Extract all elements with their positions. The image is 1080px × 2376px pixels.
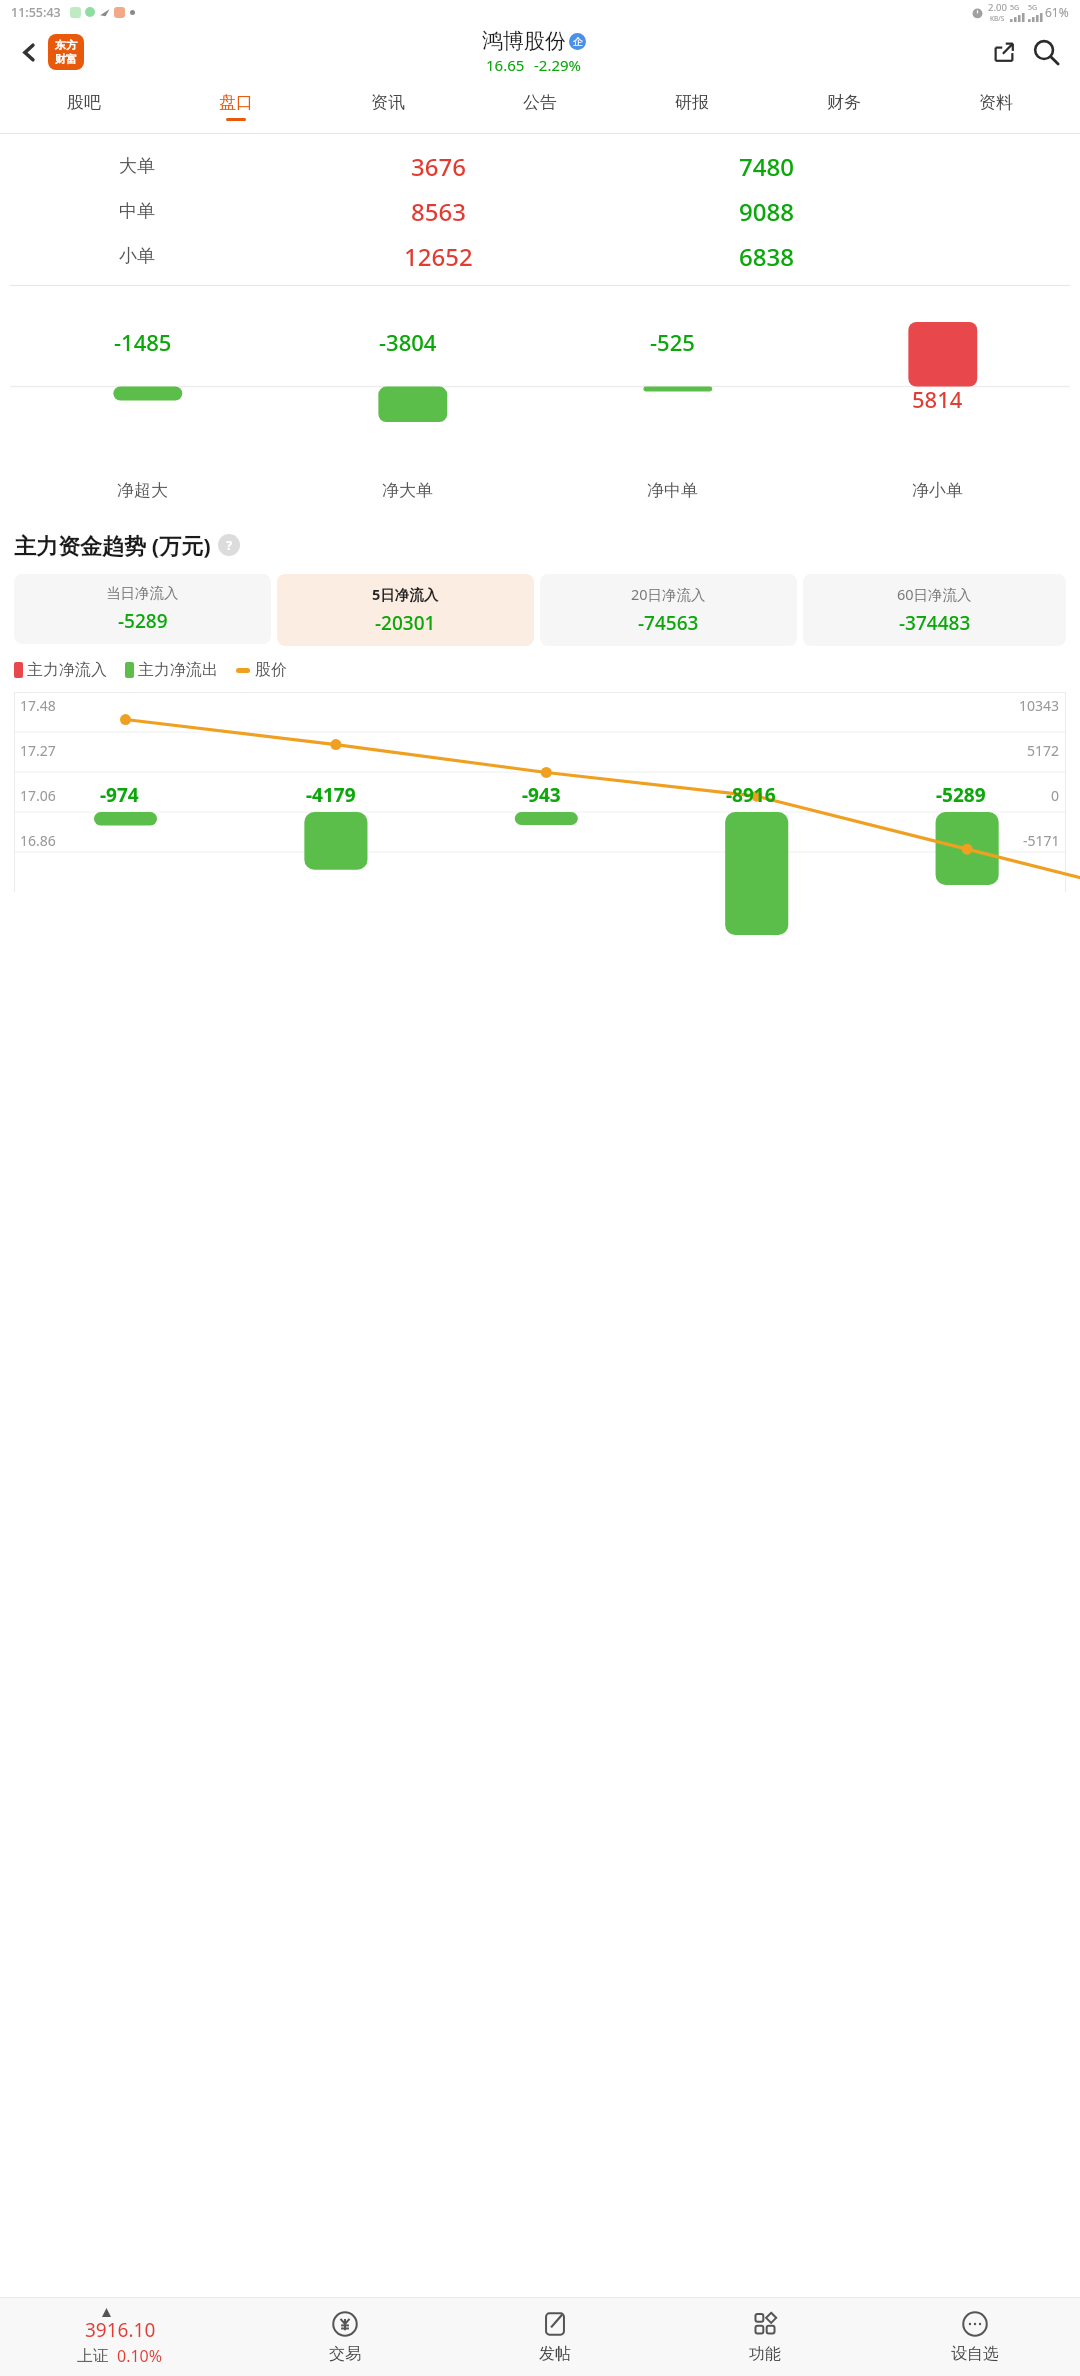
button[interactable]: Share <box>984 32 1024 72</box>
button[interactable]: East Money <box>48 34 84 70</box>
staticText: 16.86 <box>20 831 56 850</box>
staticText: 2.00 <box>988 1 1007 14</box>
staticText: 当日净流入 <box>106 584 179 602</box>
staticText: 鸿博股份 <box>482 28 566 54</box>
staticText: 11:55:43 <box>11 4 61 21</box>
staticText: 大单 <box>119 155 155 178</box>
staticText: 净中单 <box>647 480 698 501</box>
staticText: 上证 <box>77 2346 109 2366</box>
staticText: 功能 <box>749 2344 781 2364</box>
staticText: 资讯 <box>371 92 405 113</box>
button[interactable]: 资讯 <box>312 79 464 133</box>
staticText: 7480 <box>739 150 794 183</box>
button[interactable]: 设自选 <box>870 2298 1080 2376</box>
staticText: 股吧 <box>67 92 101 113</box>
button[interactable]: 当日净流入 <box>14 574 271 644</box>
staticText: 主力资金趋势 (万元) <box>14 530 211 560</box>
button[interactable]: 发帖 <box>450 2298 660 2376</box>
staticText: -974 <box>100 782 139 808</box>
staticText: 设自选 <box>951 2344 999 2364</box>
staticText: 20日净流入 <box>631 584 706 604</box>
staticText: 资料 <box>979 92 1013 113</box>
staticText: 60日净流入 <box>897 584 972 604</box>
staticText: 交易 <box>329 2344 361 2364</box>
staticText: 9088 <box>739 195 794 228</box>
staticText: 公告 <box>523 92 557 113</box>
staticText: -374483 <box>899 610 971 636</box>
button[interactable]: 3916.10 <box>0 2298 240 2376</box>
staticText: 发帖 <box>539 2344 571 2364</box>
staticText: 研报 <box>675 92 709 113</box>
staticText: KB/S <box>990 14 1005 23</box>
staticText: -5289 <box>118 608 168 634</box>
button[interactable]: 5日净流入 <box>277 574 534 646</box>
staticText: -5171 <box>1023 831 1060 850</box>
staticText: 盘口 <box>219 92 253 113</box>
staticText: 财务 <box>827 92 861 113</box>
staticText: 3916.10 <box>85 2317 156 2343</box>
button[interactable]: 交易 <box>240 2298 450 2376</box>
staticText: -4179 <box>306 782 356 808</box>
button[interactable]: 60日净流入 <box>803 574 1066 646</box>
staticText: 17.27 <box>20 741 56 760</box>
staticText: 净小单 <box>912 480 963 501</box>
staticText: 3676 <box>411 150 466 183</box>
staticText: 6838 <box>739 240 794 273</box>
button[interactable]: 20日净流入 <box>540 574 797 646</box>
staticText: 10343 <box>1019 696 1060 715</box>
staticText: -1485 <box>114 327 172 357</box>
staticText: 0.10% <box>117 2345 163 2367</box>
button[interactable]: 研报 <box>616 79 768 133</box>
staticText: 17.06 <box>20 786 56 805</box>
staticText: -525 <box>650 327 695 357</box>
button[interactable]: Help <box>218 534 240 556</box>
button[interactable]: 盘口 <box>160 79 312 133</box>
staticText: -20301 <box>375 610 436 636</box>
staticText: 5日净流入 <box>372 584 439 604</box>
staticText: 0 <box>1051 786 1060 805</box>
staticText: 净大单 <box>382 480 433 501</box>
button[interactable]: 公告 <box>464 79 616 133</box>
staticText: 东方 <box>55 38 77 52</box>
staticText: 17.48 <box>20 696 56 715</box>
staticText: 5172 <box>1027 741 1060 760</box>
button[interactable]: 财务 <box>768 79 920 133</box>
button[interactable]: 功能 <box>660 2298 870 2376</box>
button[interactable]: 股吧 <box>8 79 160 133</box>
button[interactable]: 资料 <box>920 79 1072 133</box>
staticText: -5289 <box>936 782 986 808</box>
staticText: -943 <box>522 782 561 808</box>
staticText: 8563 <box>411 195 466 228</box>
staticText: 主力净流入 <box>27 660 107 680</box>
staticText: 净超大 <box>117 480 168 501</box>
button[interactable]: Back <box>12 35 46 69</box>
staticText: 5G <box>1010 3 1020 13</box>
staticText: 主力净流出 <box>138 660 218 680</box>
staticText: -74563 <box>638 610 699 636</box>
staticText: ? <box>226 536 233 554</box>
staticText: 股价 <box>255 660 287 680</box>
staticText: 5814 <box>912 384 963 414</box>
staticText: 企 <box>573 35 583 48</box>
staticText: -3804 <box>379 327 437 357</box>
staticText: 12652 <box>404 240 473 273</box>
button[interactable]: Search <box>1024 30 1068 74</box>
staticText: -2.29% <box>534 55 582 75</box>
staticText: 小单 <box>119 245 155 268</box>
staticText: 61% <box>1045 4 1069 20</box>
staticText: 财富 <box>55 52 77 66</box>
staticText: 5G <box>1028 3 1038 13</box>
staticText: -8916 <box>726 782 776 808</box>
staticText: 16.65 <box>486 55 525 75</box>
staticText: 中单 <box>119 200 155 223</box>
